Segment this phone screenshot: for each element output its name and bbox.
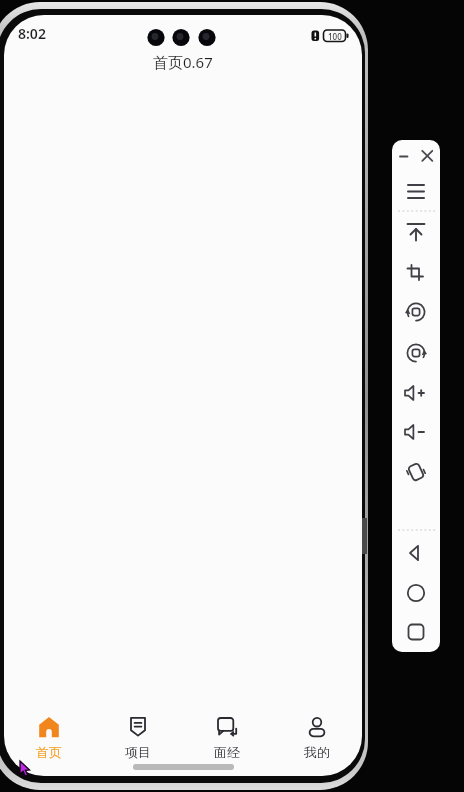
staticText: 首页 xyxy=(36,744,62,760)
button[interactable] xyxy=(418,148,436,164)
staticText: 8:02 xyxy=(18,24,46,43)
button[interactable] xyxy=(399,293,433,329)
staticText: 首页0.67 xyxy=(153,52,213,72)
button[interactable] xyxy=(399,254,433,290)
staticText: 我的 xyxy=(304,744,330,760)
button[interactable]: 我的 xyxy=(272,715,362,760)
button[interactable] xyxy=(399,534,433,570)
button[interactable] xyxy=(399,574,433,610)
button[interactable] xyxy=(399,172,433,208)
button[interactable]: 首页 xyxy=(4,715,93,760)
button[interactable] xyxy=(399,374,433,410)
button[interactable] xyxy=(399,613,433,649)
staticText: 面经 xyxy=(214,744,240,760)
button[interactable] xyxy=(394,148,412,164)
button[interactable]: 面经 xyxy=(182,715,272,760)
button[interactable] xyxy=(399,453,433,489)
staticText: 项目 xyxy=(125,744,151,760)
staticText: 100 xyxy=(328,31,342,42)
button[interactable] xyxy=(399,413,433,449)
button[interactable] xyxy=(399,334,433,370)
button[interactable]: 项目 xyxy=(93,715,182,760)
button[interactable] xyxy=(399,212,433,248)
